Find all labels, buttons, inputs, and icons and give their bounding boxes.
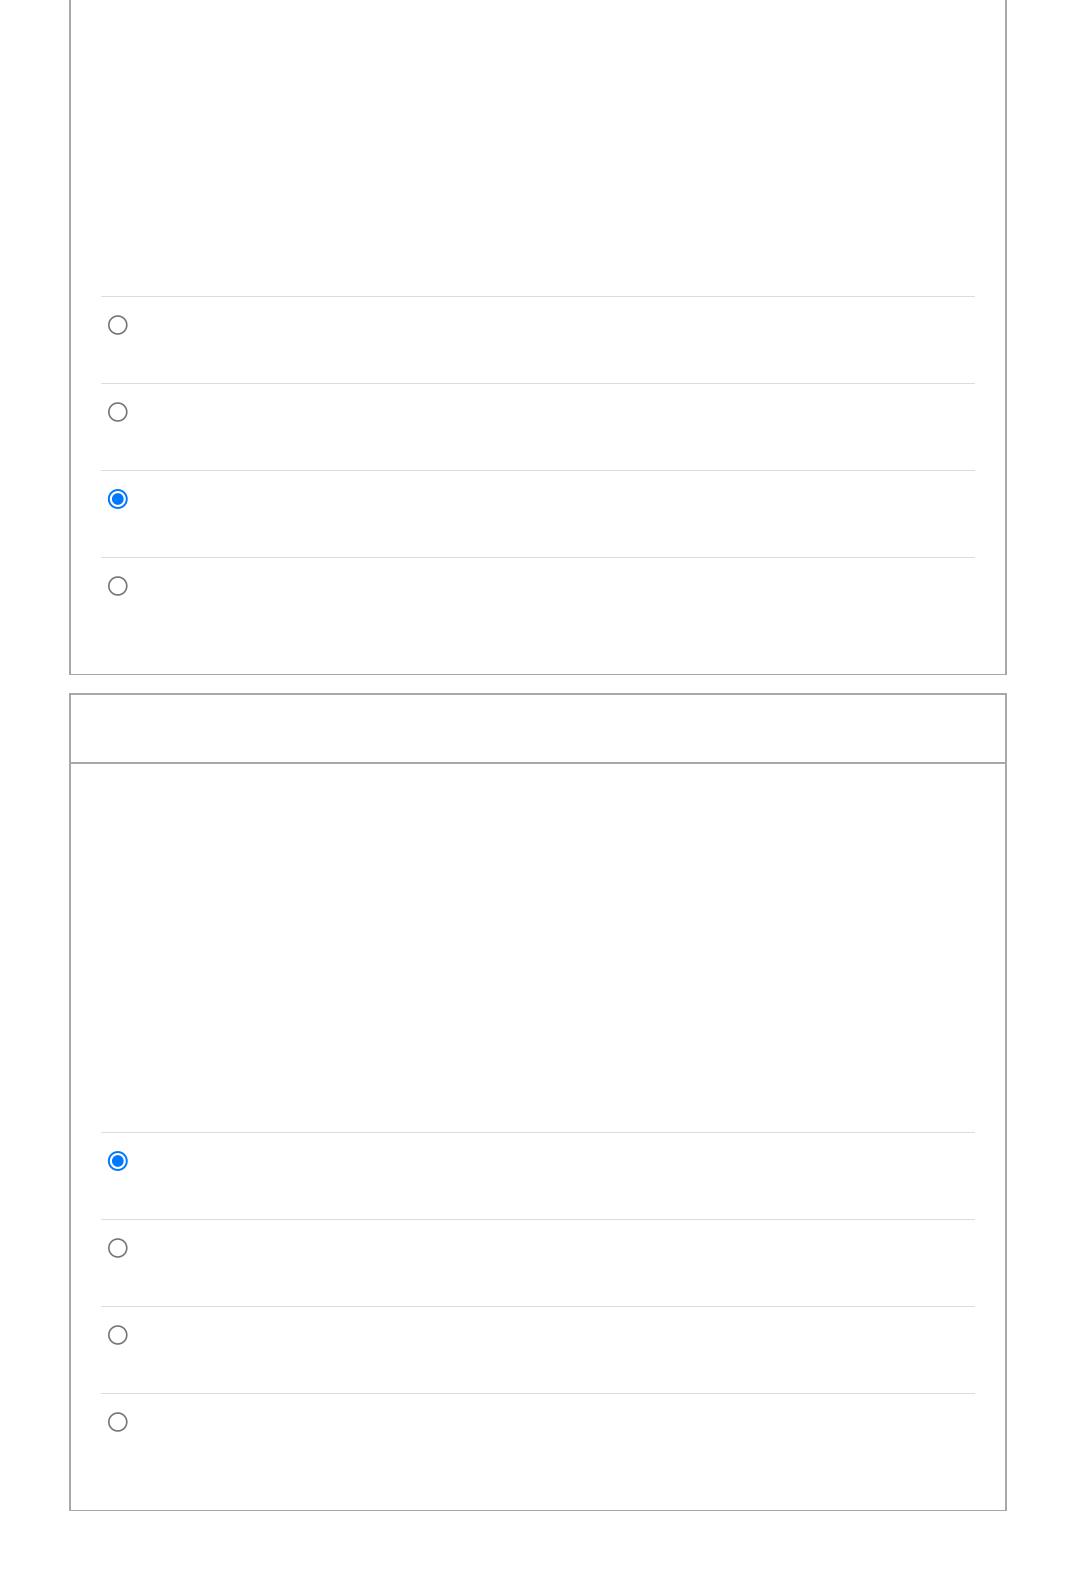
button[interactable]: Option 2 — [70, 383, 1006, 470]
button[interactable]: Choice 2 — [70, 1219, 1006, 1306]
button[interactable]: Choice 1 — [70, 1132, 1006, 1219]
button[interactable]: Option 3 — [70, 470, 1006, 557]
button[interactable]: Choice 3 — [70, 1306, 1006, 1393]
button[interactable]: Choice 4 — [70, 1393, 1006, 1510]
button[interactable]: Option 4 — [70, 557, 1006, 674]
button[interactable]: Option 1 — [70, 296, 1006, 383]
